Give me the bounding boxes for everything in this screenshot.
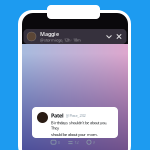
staticText: 4	[57, 139, 59, 145]
staticText: Maggie	[40, 30, 59, 37]
staticText: @stormiego, 12h · 18m	[40, 37, 81, 43]
button[interactable]: Patel	[32, 107, 118, 138]
staticText: @Pose_232	[65, 113, 85, 118]
staticText: should be about your mom.	[51, 132, 98, 137]
button[interactable]: Maggie	[23, 29, 126, 44]
staticText: 9	[93, 139, 95, 145]
staticText: Birthdays shouldn't be about you. They	[51, 120, 107, 131]
staticText: Patel	[51, 112, 64, 119]
staticText: 12	[74, 139, 78, 145]
